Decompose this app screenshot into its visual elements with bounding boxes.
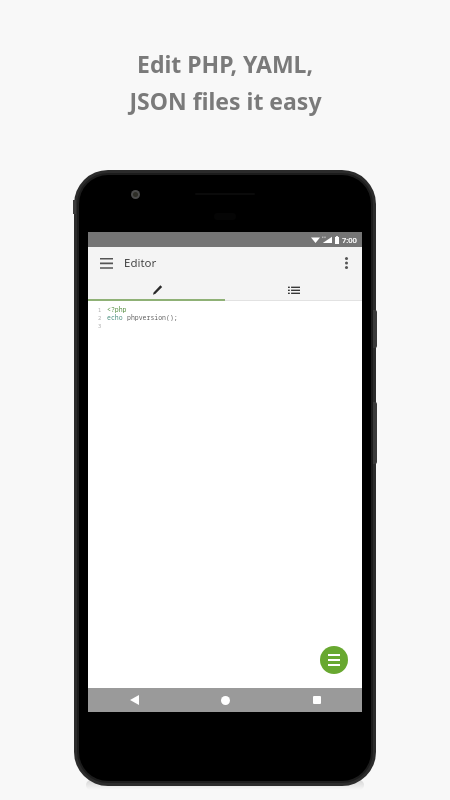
button[interactable]: Open navigation menu	[95, 252, 117, 274]
staticText: 3	[98, 322, 102, 329]
button[interactable]: Back	[88, 688, 180, 712]
staticText: Editor	[124, 255, 157, 271]
staticText: 7:00	[342, 235, 357, 245]
staticText: phpversion();	[127, 313, 178, 321]
staticText: 2	[98, 314, 102, 321]
staticText: Edit PHP, YAML,	[137, 48, 313, 79]
button[interactable]: Editor actions menu	[320, 646, 348, 674]
staticText: 1	[98, 306, 102, 313]
button[interactable]: Recent apps	[271, 688, 362, 712]
staticText: JSON files it easy	[129, 85, 322, 116]
button[interactable]: Home	[180, 688, 271, 712]
button[interactable]: Editor tab	[88, 279, 225, 301]
button[interactable]: Files list tab	[225, 279, 362, 301]
staticText: echo	[107, 313, 127, 321]
staticText: <?php	[107, 305, 127, 313]
button[interactable]: More options	[335, 252, 357, 274]
